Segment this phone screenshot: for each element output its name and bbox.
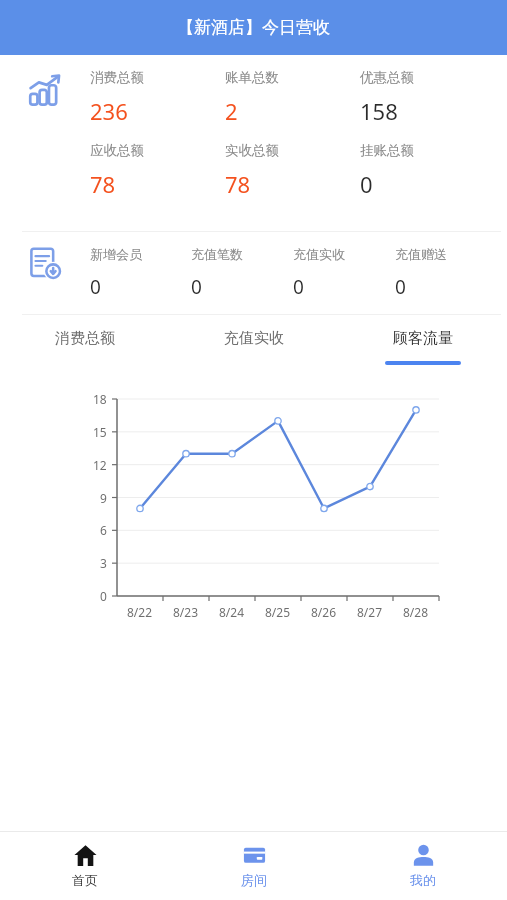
other: Home [74, 844, 97, 867]
staticText: 158 [360, 96, 398, 126]
staticText: 消费总额 [55, 329, 115, 348]
button[interactable]: Rooms [169, 832, 338, 900]
staticText: 78 [90, 169, 116, 199]
staticText: 挂账总额 [360, 142, 414, 159]
staticText: 新增会员 [90, 246, 142, 262]
staticText: 充值赠送 [395, 246, 447, 262]
staticText: 账单总数 [225, 69, 279, 86]
other: Membership report [28, 246, 62, 280]
other: Rooms [243, 844, 266, 867]
button[interactable]: 充值实收 [169, 315, 338, 381]
button[interactable]: 消费总额 [0, 315, 169, 381]
staticText: 充值实收 [293, 246, 345, 262]
staticText: 0 [395, 274, 406, 300]
staticText: 我的 [410, 872, 436, 888]
staticText: 消费总额 [90, 69, 144, 86]
staticText: 78 [225, 169, 251, 199]
staticText: 【新酒店】今日营收 [177, 17, 330, 38]
staticText: 实收总额 [225, 142, 279, 159]
staticText: 房间 [241, 872, 267, 888]
other: Profile [412, 844, 435, 867]
other: Revenue statistics [27, 73, 63, 109]
staticText: 236 [90, 96, 128, 126]
staticText: 0 [191, 274, 202, 300]
staticText: 0 [293, 274, 304, 300]
staticText: 0 [90, 274, 101, 300]
staticText: 充值实收 [224, 329, 284, 348]
staticText: 2 [225, 96, 238, 126]
staticText: 0 [360, 169, 373, 199]
button[interactable]: Profile [338, 832, 507, 900]
button[interactable]: Home [0, 832, 169, 900]
staticText: 充值笔数 [191, 246, 243, 262]
staticText: 首页 [72, 872, 98, 888]
staticText: 优惠总额 [360, 69, 414, 86]
staticText: 应收总额 [90, 142, 144, 159]
staticText: 顾客流量 [393, 329, 453, 348]
button[interactable]: 顾客流量 [338, 315, 507, 381]
